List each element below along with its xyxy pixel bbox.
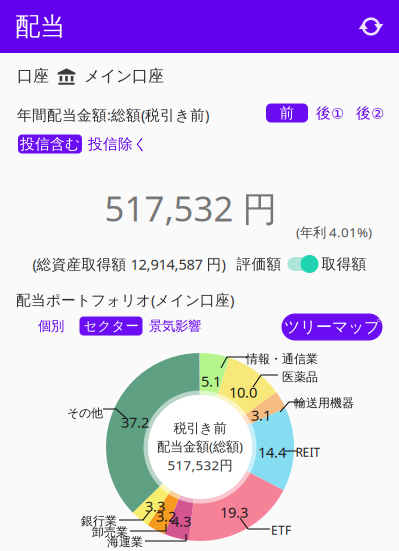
staticText: 前 (279, 104, 294, 122)
staticText: 3.3 (145, 496, 165, 516)
staticText: 卸売業 (92, 525, 128, 539)
staticText: 税引き前 (173, 420, 226, 436)
staticText: (総資産取得額 12,914,587 円) (32, 254, 225, 274)
staticText: 4.3 (171, 511, 191, 531)
staticText: セクター (83, 318, 138, 334)
staticText: 配当金額(総額) (157, 437, 243, 455)
staticText: その他 (67, 406, 103, 420)
staticText: 取得額 (321, 255, 366, 273)
staticText: 年間配当金額:総額(税引き前) (17, 105, 209, 124)
staticText: 14.4 (258, 442, 286, 462)
button[interactable]: Switch valuation and cost basis (281, 254, 318, 274)
staticText: 輸送用機器 (294, 396, 354, 410)
staticText: 19.3 (220, 502, 248, 522)
staticText: 銀行業 (81, 514, 117, 528)
staticText: メイン口座 (84, 66, 164, 86)
button[interactable]: 後① (312, 103, 348, 122)
staticText: 後② (356, 104, 384, 122)
staticText: 配当 (15, 11, 65, 42)
staticText: 3.2 (156, 506, 176, 526)
button[interactable]: ツリーマップ (281, 313, 382, 340)
button[interactable]: Refresh (351, 6, 391, 46)
staticText: 10.0 (229, 382, 257, 402)
staticText: ツリーマップ (284, 317, 380, 337)
staticText: 医薬品 (282, 370, 318, 384)
staticText: 個別 (38, 318, 64, 334)
button[interactable]: 個別 (33, 316, 69, 335)
staticText: 景気影響 (149, 318, 201, 334)
button[interactable]: 後② (352, 103, 388, 122)
staticText: REIT (295, 444, 320, 460)
button[interactable]: 投信含む (18, 134, 82, 153)
staticText: 投信含む (20, 135, 80, 153)
staticText: 投信除く (88, 135, 148, 153)
staticText: (年利 4.01%) (296, 223, 372, 241)
staticText: 5.1 (201, 371, 221, 391)
staticText: 海運業 (107, 535, 143, 549)
staticText: 配当ポートフォリオ(メイン口座) (16, 290, 234, 309)
staticText: 情報・通信業 (246, 352, 318, 366)
staticText: ETF (271, 522, 291, 538)
staticText: 評価額 (236, 255, 281, 273)
button[interactable]: セクター (79, 316, 142, 335)
staticText: 後① (316, 104, 344, 122)
staticText: 517,532 円 (104, 185, 277, 231)
staticText: 37.2 (121, 412, 149, 432)
staticText: 口座 (17, 66, 49, 86)
button[interactable]: 投信除く (92, 134, 144, 153)
button[interactable]: 景気影響 (152, 316, 198, 335)
staticText: 517,532円 (167, 456, 232, 474)
staticText: 3.1 (251, 405, 271, 425)
button[interactable]: 前 (266, 103, 308, 122)
